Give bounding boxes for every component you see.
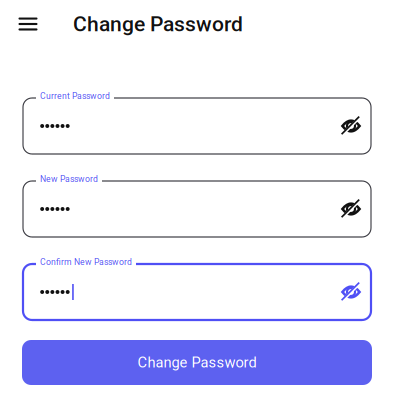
button[interactable]: Show New Password (336, 194, 366, 224)
staticText: Current Password (40, 91, 110, 101)
button[interactable]: Show Current Password (336, 111, 366, 141)
staticText: New Password (40, 174, 98, 184)
button[interactable]: Show Confirm New Password (336, 277, 366, 307)
button[interactable]: Change Password (22, 340, 372, 385)
staticText: Change Password (137, 354, 256, 371)
staticText: Change Password (73, 12, 243, 36)
button[interactable]: Menu (8, 4, 48, 44)
staticText: Confirm New Password (40, 257, 132, 267)
